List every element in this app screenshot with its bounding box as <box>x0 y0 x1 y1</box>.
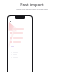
button[interactable] <box>10 32 23 34</box>
button[interactable] <box>10 37 23 39</box>
button[interactable] <box>10 41 21 43</box>
staticText: Move your library over in a few taps <box>16 8 48 11</box>
button[interactable] <box>11 51 18 53</box>
button[interactable] <box>10 28 24 30</box>
button[interactable] <box>11 53 17 55</box>
staticText: Fast import <box>20 2 44 8</box>
button[interactable] <box>11 56 18 58</box>
